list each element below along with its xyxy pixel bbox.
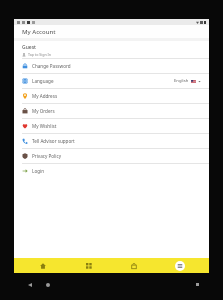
staticText: English [174,78,189,84]
staticText: My Address [32,93,58,99]
staticText: Language [32,78,54,84]
button[interactable]: Privacy Policy [14,149,209,163]
staticText: Privacy Policy [32,153,61,159]
button[interactable]: Login [14,164,209,178]
staticText: Guest [22,44,36,51]
button[interactable]: Language [14,74,209,88]
button[interactable]: My Orders [14,104,209,118]
staticText: Tap to Sign In [28,52,51,57]
button[interactable]: Menu [164,258,196,273]
staticText: Tell Advisor support [32,138,75,144]
staticText: My Account [22,28,56,36]
staticText: Change Password [32,63,71,69]
button[interactable]: My Wishlist [14,119,209,133]
staticText: My Wishlist [32,123,57,129]
button[interactable]: Cart [118,258,150,273]
button[interactable]: Change Password [14,59,209,73]
staticText: My Orders [32,108,55,114]
button[interactable]: Categories [73,258,105,273]
button[interactable]: Guest [14,41,209,58]
button[interactable]: My Address [14,89,209,103]
staticText: Login [32,168,45,174]
button[interactable]: Tell Advisor support [14,134,209,148]
button[interactable]: Home [27,258,59,273]
